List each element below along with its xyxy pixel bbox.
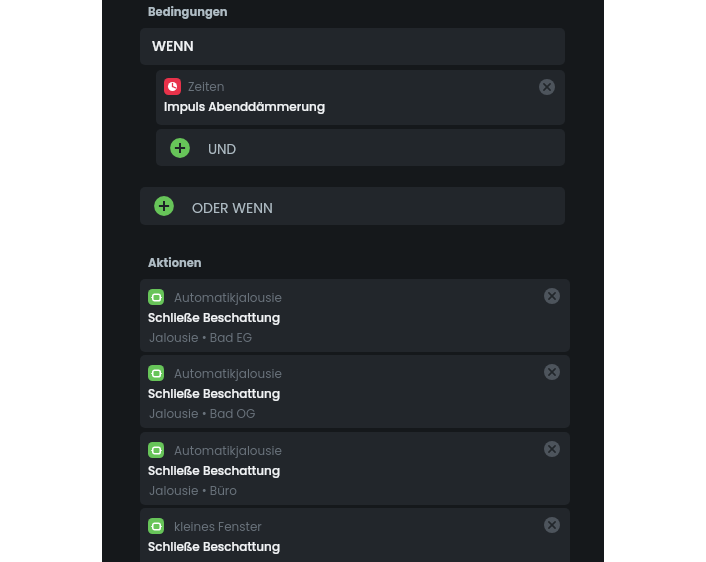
staticText: ODER WENN — [192, 198, 273, 218]
staticText: Automatikjalousie — [174, 365, 282, 382]
button[interactable]: Automatikjalousie — [140, 355, 570, 428]
button[interactable]: Hinzufügen — [140, 187, 565, 225]
staticText: Jalousie • Büro — [149, 482, 237, 499]
button[interactable]: Entfernen — [538, 78, 556, 96]
button[interactable]: Entfernen — [543, 287, 561, 305]
staticText: Automatikjalousie — [174, 289, 282, 306]
button[interactable]: WENN — [140, 28, 565, 65]
button[interactable]: Zeiten — [156, 70, 565, 125]
button[interactable]: Entfernen — [543, 363, 561, 381]
button[interactable]: kleines Fenster — [140, 508, 570, 562]
button[interactable]: Entfernen — [543, 440, 561, 458]
staticText: Aktionen — [148, 255, 202, 271]
staticText: kleines Fenster — [174, 518, 262, 535]
staticText: Jalousie • Bad OG — [149, 405, 256, 422]
staticText: Zeiten — [188, 78, 225, 95]
staticText: Automatikjalousie — [174, 442, 282, 459]
staticText: UND — [208, 140, 237, 159]
button[interactable]: Automatikjalousie — [140, 432, 570, 505]
staticText: Schließe Beschattung — [148, 309, 281, 326]
staticText: Impuls Abenddämmerung — [164, 98, 326, 115]
staticText: Bedingungen — [148, 4, 228, 20]
other: Hinzufügen — [154, 196, 174, 216]
other: Hinzufügen — [170, 138, 190, 158]
button[interactable]: Hinzufügen — [156, 129, 565, 166]
staticText: Schließe Beschattung — [148, 538, 281, 555]
button[interactable]: Entfernen — [543, 516, 561, 534]
staticText: WENN — [152, 36, 194, 56]
staticText: Schließe Beschattung — [148, 462, 281, 479]
staticText: Jalousie • Bad EG — [149, 329, 253, 346]
staticText: Schließe Beschattung — [148, 385, 281, 402]
button[interactable]: Automatikjalousie — [140, 279, 570, 352]
